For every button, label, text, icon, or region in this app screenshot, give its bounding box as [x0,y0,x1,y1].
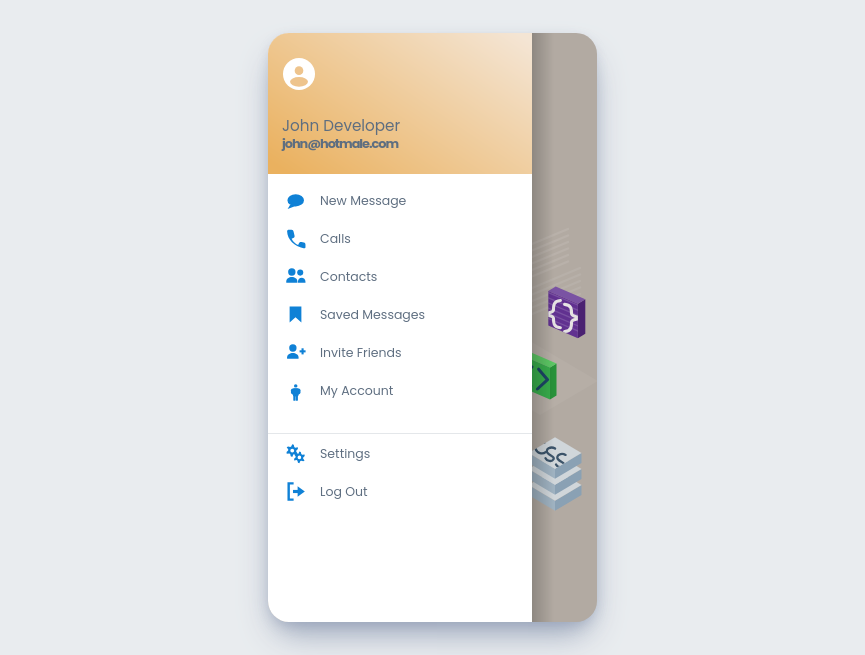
button[interactable]: My Account [268,371,532,409]
staticText: New Message [320,192,407,209]
button[interactable]: Settings [268,434,532,472]
staticText: Calls [320,230,351,247]
staticText: Contacts [320,268,378,285]
button[interactable]: Calls [268,219,532,257]
staticText: John Developer [282,115,401,136]
button[interactable]: Profile [283,58,315,90]
staticText: My Account [320,382,394,399]
button[interactable]: New Message [268,181,532,219]
staticText: Invite Friends [320,344,402,361]
staticText: Saved Messages [320,306,426,323]
staticText: Log Out [320,483,368,500]
staticText: Settings [320,445,371,462]
button[interactable]: Saved Messages [268,295,532,333]
staticText: john@hotmale.com [282,134,399,152]
button[interactable]: Invite Friends [268,333,532,371]
button[interactable]: Log Out [268,472,532,510]
button[interactable]: Contacts [268,257,532,295]
